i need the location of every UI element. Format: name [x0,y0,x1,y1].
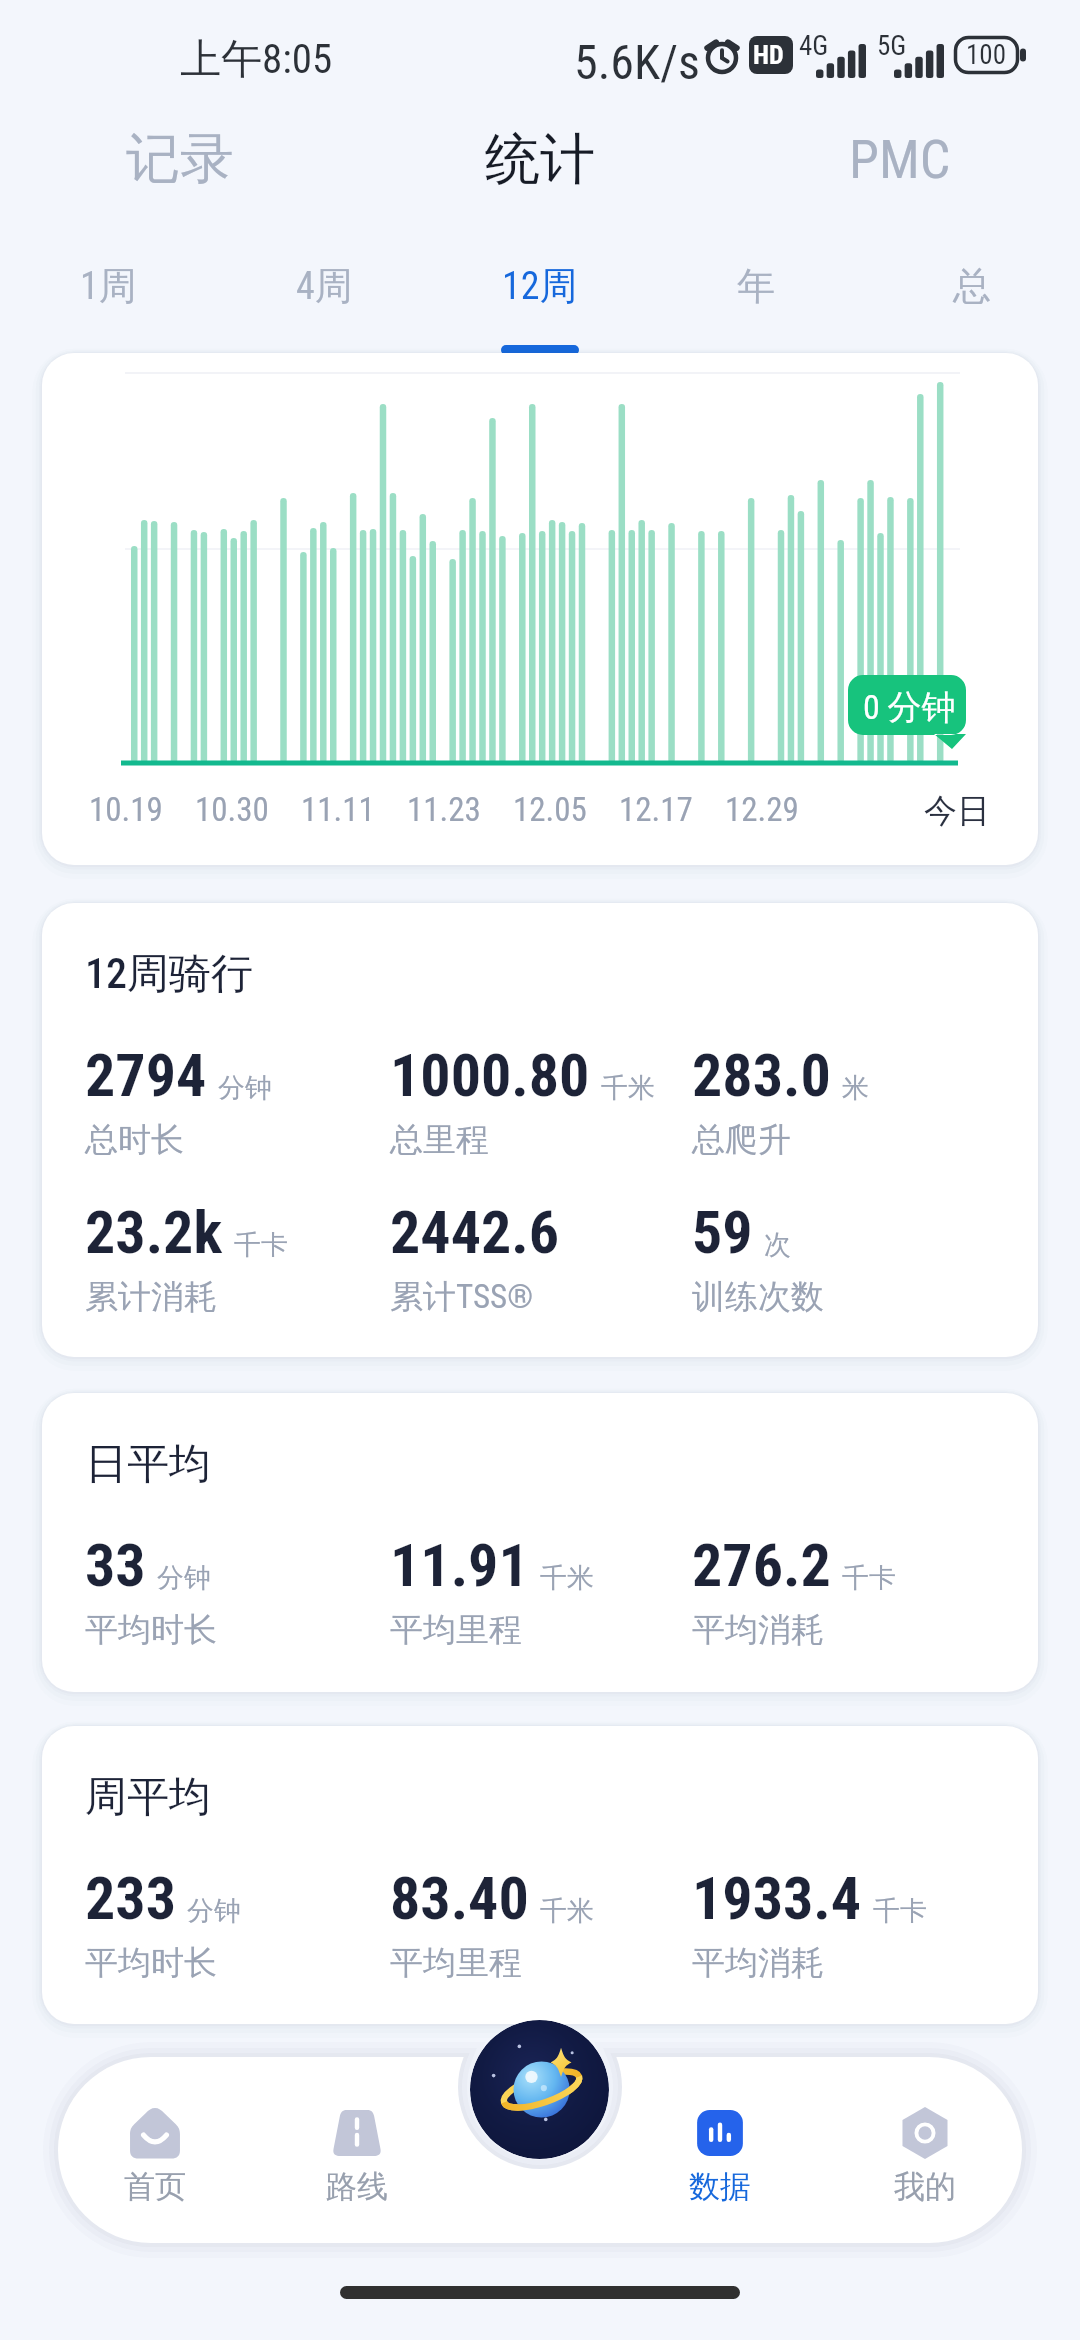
staticText: 59 [692,1197,753,1267]
staticText: 千米 [601,1071,655,1105]
button[interactable]: 我的 [849,2101,1001,2213]
button[interactable]: 1周 [0,214,216,354]
staticText: 记录 [126,125,234,193]
staticText: 千卡 [234,1228,288,1262]
button[interactable]: 数据 [644,2101,796,2213]
staticText: 次 [764,1228,791,1262]
staticText: 10.19 [89,790,163,829]
staticText: 千米 [540,1561,594,1595]
staticText: 平均里程 [390,1609,522,1651]
staticText: 276.2 [692,1530,831,1600]
staticText: 2442.6 [390,1197,560,1267]
staticText: 总 [953,262,991,310]
staticText: 283.0 [692,1040,831,1110]
staticText: 1周 [80,262,137,310]
staticText: HD [753,40,784,70]
staticText: 千卡 [873,1894,927,1928]
staticText: 11.11 [301,790,375,829]
button[interactable]: 12周 [432,214,648,354]
staticText: 总里程 [390,1119,489,1161]
button[interactable]: 路线 [281,2101,433,2213]
staticText: 4G [799,30,829,62]
staticText: 分钟 [157,1561,211,1595]
staticText: 33 [85,1530,146,1600]
staticText: 年 [737,262,775,310]
staticText: 0 分钟 [863,686,956,729]
staticText: 路线 [326,2167,388,2206]
staticText: 累计消耗 [85,1276,217,1318]
staticText: 11.23 [407,790,481,829]
staticText: 10.30 [195,790,269,829]
staticText: 12周 [502,262,578,310]
staticText: 上午8:05 [180,34,333,86]
staticText: 1933.4 [692,1863,862,1933]
staticText: 千卡 [842,1561,896,1595]
staticText: 83.40 [390,1863,529,1933]
button[interactable]: 年 [648,214,864,354]
staticText: 累计TSS® [390,1276,534,1318]
staticText: 11.91 [390,1530,529,1600]
staticText: 数据 [689,2167,751,2206]
staticText: 周平均 [85,1771,211,1824]
button[interactable]: 4周 [216,214,432,354]
staticText: 统计 [485,125,595,194]
staticText: PMC [849,128,951,191]
staticText: 总爬升 [692,1119,791,1161]
staticText: 平均里程 [390,1942,522,1984]
staticText: 分钟 [187,1894,241,1928]
button[interactable]: 记录 [0,104,360,214]
staticText: 日平均 [85,1438,211,1491]
staticText: 米 [842,1071,869,1105]
staticText: 23.2k [85,1197,223,1267]
staticText: 5G [877,30,907,62]
staticText: 2794 [85,1040,207,1110]
staticText: 千米 [540,1894,594,1928]
staticText: 4周 [296,262,353,310]
staticText: 平均消耗 [692,1609,824,1651]
button[interactable]: 统计 [360,104,720,214]
staticText: 我的 [894,2167,956,2206]
staticText: 今日 [924,790,990,832]
button[interactable]: PMC [720,104,1080,214]
staticText: 12.05 [513,790,587,829]
staticText: 1000.80 [390,1040,590,1110]
staticText: 平均时长 [85,1942,217,1984]
button[interactable]: 总 [864,214,1080,354]
staticText: 12.17 [619,790,693,829]
staticText: 12.29 [725,790,799,829]
button[interactable]: 首页 [79,2101,231,2213]
staticText: 平均消耗 [692,1942,824,1984]
staticText: 总时长 [85,1119,184,1161]
staticText: 100 [966,39,1006,71]
staticText: 训练次数 [692,1276,824,1318]
staticText: 首页 [124,2167,186,2206]
staticText: 233 [85,1863,176,1933]
staticText: 5.6K/s [574,34,700,90]
staticText: 12周骑行 [85,948,253,1001]
staticText: 分钟 [218,1071,272,1105]
staticText: 平均时长 [85,1609,217,1651]
button[interactable]: 探索 [470,2020,609,2159]
